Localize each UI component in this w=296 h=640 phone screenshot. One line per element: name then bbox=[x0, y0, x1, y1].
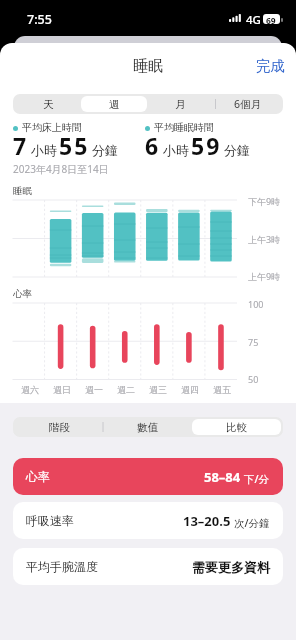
staticText: 天 bbox=[43, 98, 54, 111]
staticText: 比較 bbox=[226, 421, 247, 434]
staticText: 上午3時 bbox=[248, 233, 281, 245]
staticText: 100 bbox=[248, 298, 264, 310]
staticText: 週五 bbox=[213, 384, 231, 395]
staticText: 週三 bbox=[149, 384, 167, 395]
staticText: 數值 bbox=[137, 421, 158, 434]
staticText: 小時 bbox=[163, 142, 189, 158]
staticText: 下/分 bbox=[244, 472, 270, 486]
staticText: 階段 bbox=[49, 421, 70, 434]
staticText: 月 bbox=[175, 98, 186, 111]
staticText: 小時 bbox=[31, 142, 57, 158]
staticText: 7 bbox=[13, 130, 29, 161]
staticText: 心率 bbox=[13, 288, 32, 300]
button[interactable]: 完成 bbox=[245, 48, 296, 84]
button[interactable]: 天 bbox=[15, 96, 81, 112]
staticText: 週六 bbox=[21, 384, 39, 395]
button[interactable]: 平均手腕溫度 bbox=[13, 548, 283, 585]
staticText: 6 bbox=[145, 130, 161, 161]
staticText: 4G bbox=[246, 12, 261, 28]
staticText: 週一 bbox=[85, 384, 103, 395]
staticText: 週二 bbox=[117, 384, 135, 395]
staticText: 週四 bbox=[181, 384, 199, 395]
button[interactable]: 呼吸速率 bbox=[13, 502, 283, 539]
staticText: 週日 bbox=[53, 384, 71, 395]
staticText: 上午9時 bbox=[248, 270, 281, 282]
staticText: 平均床上時間 bbox=[22, 121, 82, 134]
staticText: 6個月 bbox=[234, 97, 262, 111]
staticText: 睡眠 bbox=[133, 57, 163, 76]
button[interactable]: 月 bbox=[147, 96, 214, 112]
button[interactable]: 階段 bbox=[15, 419, 103, 435]
staticText: 分鐘 bbox=[92, 142, 118, 158]
staticText: 次/分鐘 bbox=[234, 516, 270, 530]
button[interactable]: 週 bbox=[81, 96, 147, 112]
button[interactable]: 6個月 bbox=[214, 96, 281, 112]
staticText: 55 bbox=[59, 130, 90, 161]
staticText: 75 bbox=[248, 336, 259, 348]
button[interactable]: 數值 bbox=[103, 419, 192, 435]
staticText: 完成 bbox=[256, 57, 285, 75]
staticText: 7:55 bbox=[27, 11, 52, 28]
button[interactable]: 比較 bbox=[192, 419, 281, 435]
staticText: 睡眠 bbox=[13, 185, 32, 197]
staticText: 平均睡眠時間 bbox=[154, 121, 214, 134]
staticText: 週 bbox=[109, 98, 120, 111]
staticText: 13–20.5 bbox=[183, 512, 231, 530]
staticText: 2023年4月8日至14日 bbox=[13, 162, 109, 176]
staticText: 69 bbox=[266, 15, 276, 27]
staticText: 心率 bbox=[26, 469, 50, 484]
staticText: 呼吸速率 bbox=[26, 513, 74, 528]
staticText: 59 bbox=[191, 130, 222, 161]
staticText: 分鐘 bbox=[224, 142, 250, 158]
staticText: 50 bbox=[248, 373, 259, 385]
button[interactable]: 心率 bbox=[13, 458, 283, 495]
staticText: 需要更多資料 bbox=[192, 559, 270, 575]
staticText: 下午9時 bbox=[248, 195, 281, 207]
staticText: 58–84 bbox=[204, 468, 241, 486]
staticText: 平均手腕溫度 bbox=[26, 559, 98, 574]
